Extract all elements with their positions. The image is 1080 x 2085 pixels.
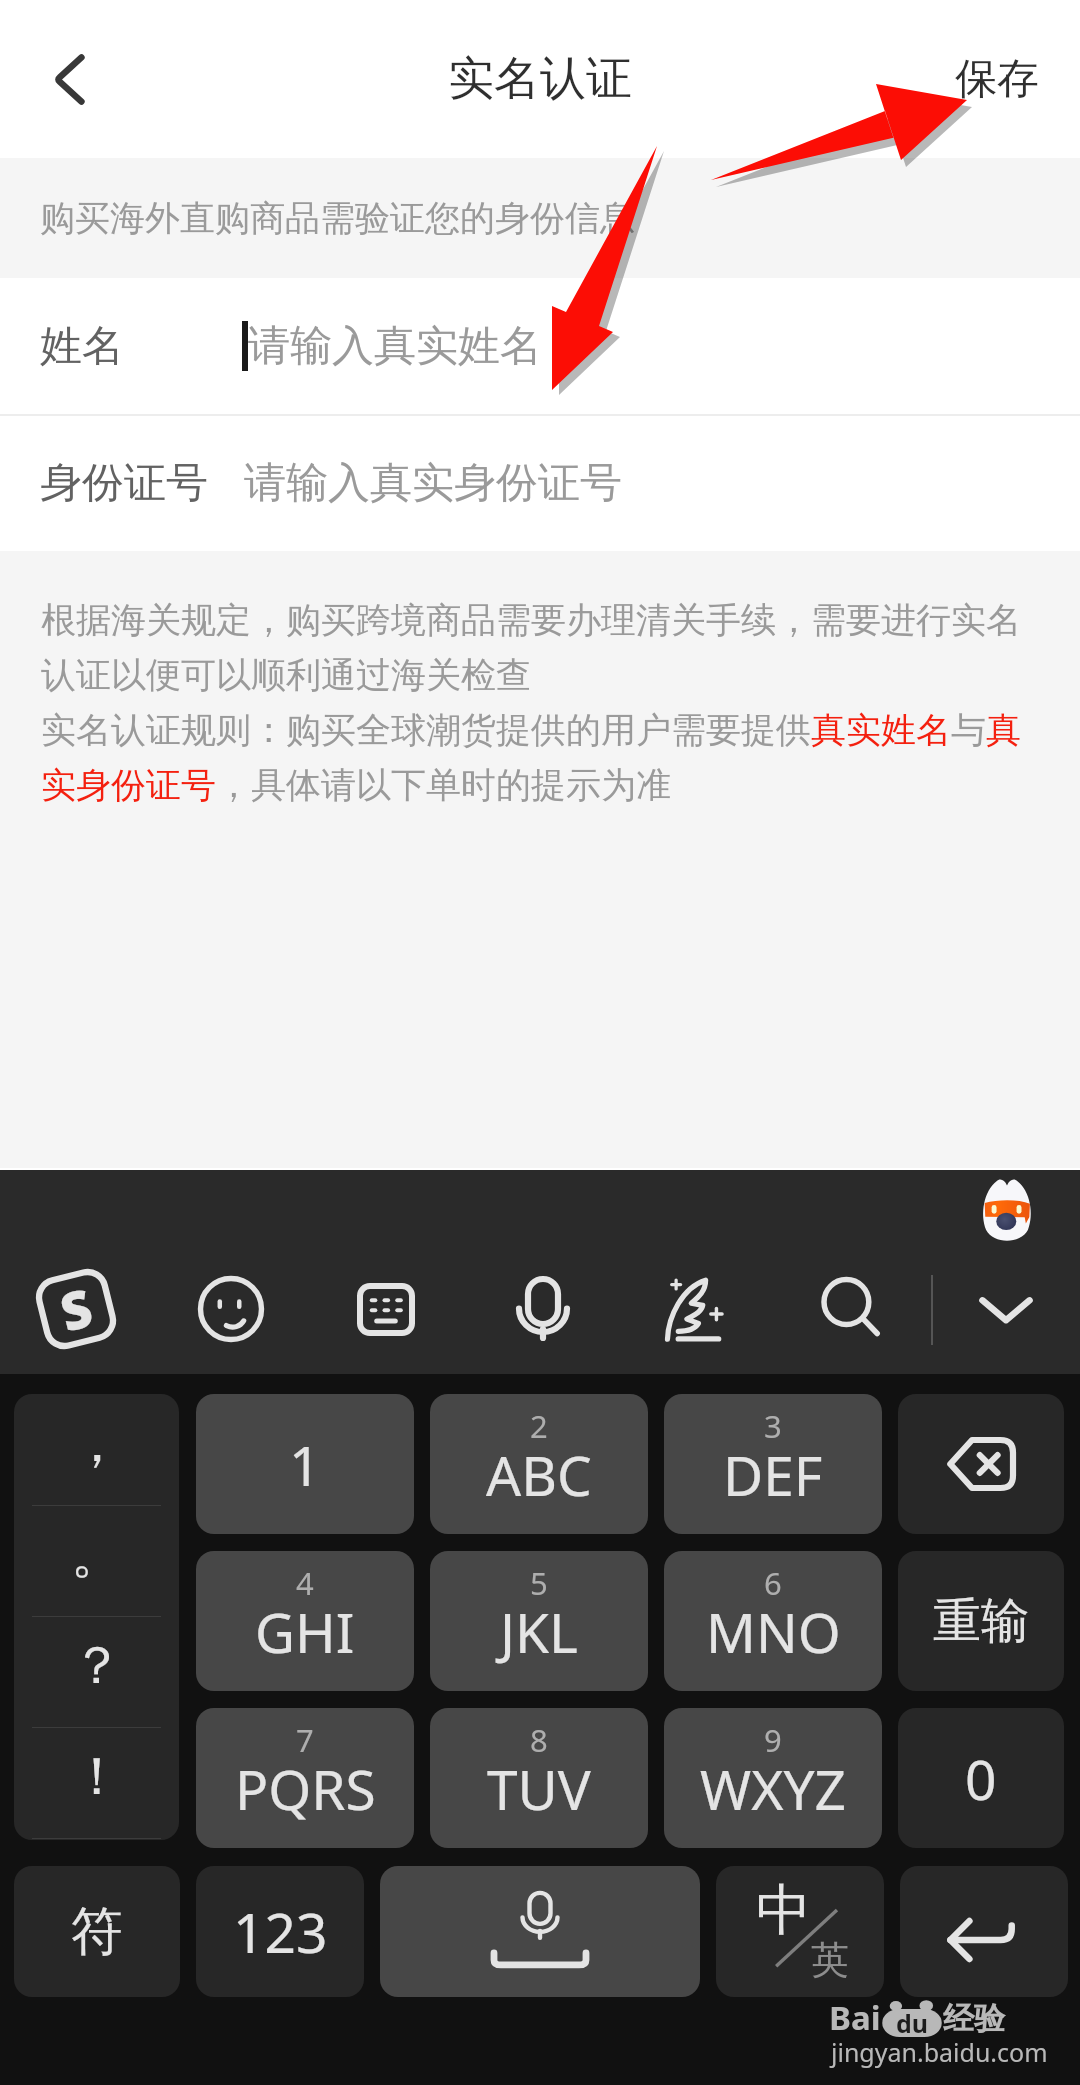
- button[interactable]: 符: [14, 1866, 180, 1997]
- staticText: du: [896, 2006, 929, 2040]
- staticText: Bai: [829, 1995, 881, 2040]
- staticText: 请输入真实身份证号: [244, 457, 622, 510]
- staticText: 重输: [933, 1591, 1029, 1651]
- staticText: S: [53, 1270, 100, 1347]
- staticText: DEF: [723, 1437, 823, 1512]
- staticText: jingyan.baidu.com: [831, 2035, 1048, 2069]
- staticText: MNO: [706, 1594, 841, 1669]
- button[interactable]: 5: [430, 1551, 648, 1691]
- other: Space / voice input: [380, 1866, 700, 1997]
- staticText: 根据海关规定，购买跨境商品需要办理清关手续，需要进行实名认证以便可以顺利通过海关…: [41, 598, 1026, 807]
- button[interactable]: 6: [664, 1551, 882, 1691]
- staticText: TUV: [487, 1751, 591, 1826]
- button[interactable]: Back: [0, 0, 132, 158]
- button[interactable]: 保存: [913, 0, 1080, 158]
- staticText: 4: [296, 1562, 314, 1604]
- button[interactable]: Hide keyboard: [956, 1259, 1056, 1359]
- staticText: ，: [71, 1411, 123, 1477]
- button[interactable]: 4: [196, 1551, 414, 1691]
- staticText: 8: [530, 1719, 548, 1761]
- button[interactable]: Handwriting: [647, 1259, 747, 1359]
- staticText: 0: [965, 1741, 997, 1816]
- button[interactable]: 0: [898, 1708, 1064, 1848]
- staticText: 符: [71, 1899, 123, 1965]
- staticText: 3: [764, 1405, 782, 1447]
- button[interactable]: Keyboard layout: [336, 1259, 436, 1359]
- button[interactable]: Sogou input method: [26, 1259, 126, 1359]
- button[interactable]: 3: [664, 1394, 882, 1534]
- staticText: 身份证号: [40, 457, 208, 510]
- staticText: 5: [530, 1562, 548, 1604]
- staticText: 实名认证: [448, 50, 632, 108]
- staticText: 123: [233, 1894, 328, 1969]
- button[interactable]: 9: [664, 1708, 882, 1848]
- button[interactable]: 姓名: [0, 278, 1080, 414]
- staticText: 1: [289, 1427, 321, 1502]
- staticText: 7: [296, 1719, 314, 1761]
- button[interactable]: 重输: [898, 1551, 1064, 1691]
- staticText: 请输入真实姓名: [248, 320, 542, 373]
- staticText: 中: [756, 1876, 811, 1945]
- staticText: GHI: [255, 1594, 355, 1669]
- button[interactable]: Search: [802, 1259, 902, 1359]
- button[interactable]: 身份证号: [0, 416, 1080, 551]
- staticText: ？: [71, 1633, 123, 1699]
- button[interactable]: 123: [196, 1866, 364, 1997]
- staticText: ABC: [486, 1437, 592, 1512]
- staticText: 2: [530, 1405, 548, 1447]
- staticText: 经验: [943, 1999, 1005, 2038]
- other: Chinese English toggle: [716, 1866, 884, 1997]
- staticText: 姓名: [40, 320, 124, 373]
- other: Enter: [900, 1866, 1068, 1997]
- staticText: WXYZ: [700, 1751, 846, 1826]
- button[interactable]: Enter: [900, 1866, 1068, 1997]
- button[interactable]: Voice input: [493, 1259, 593, 1359]
- button[interactable]: Emoji: [181, 1259, 281, 1359]
- staticText: 购买海外直购商品需验证您的身份信息: [40, 196, 635, 240]
- button[interactable]: Assistant: [978, 1178, 1036, 1243]
- button[interactable]: Space / voice input: [380, 1866, 700, 1997]
- button[interactable]: 2: [430, 1394, 648, 1534]
- staticText: 9: [764, 1719, 782, 1761]
- staticText: JKL: [500, 1594, 578, 1669]
- button[interactable]: Chinese English toggle: [716, 1866, 884, 1997]
- staticText: 。: [71, 1522, 123, 1588]
- staticText: 英: [811, 1936, 849, 1984]
- button[interactable]: 7: [196, 1708, 414, 1848]
- button[interactable]: Backspace: [898, 1394, 1064, 1534]
- staticText: 6: [764, 1562, 782, 1604]
- button[interactable]: 1: [196, 1394, 414, 1534]
- staticText: 保存: [955, 53, 1039, 106]
- button[interactable]: 8: [430, 1708, 648, 1848]
- staticText: ！: [71, 1744, 123, 1810]
- other: Backspace: [898, 1394, 1064, 1534]
- staticText: PQRS: [235, 1751, 376, 1826]
- button[interactable]: ，: [14, 1394, 179, 1840]
